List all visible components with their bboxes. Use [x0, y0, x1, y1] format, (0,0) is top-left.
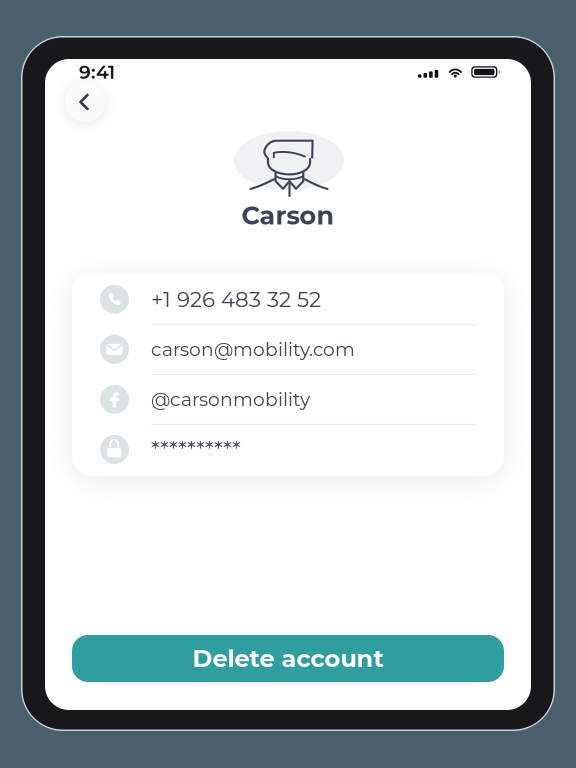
- staticText: Delete account: [192, 644, 383, 673]
- button[interactable]: Delete account: [72, 635, 504, 682]
- staticText: **********: [151, 436, 241, 463]
- staticText: @carsonmobility: [151, 388, 310, 411]
- button[interactable]: Back: [65, 82, 105, 122]
- staticText: Carson: [241, 200, 334, 231]
- staticText: 9:41: [79, 61, 115, 83]
- button[interactable]: +1 926 483 32 52: [100, 275, 476, 325]
- staticText: carson@mobility.com: [151, 338, 355, 361]
- staticText: +1 926 483 32 52: [151, 286, 321, 312]
- button[interactable]: **********: [100, 425, 476, 474]
- button[interactable]: @carsonmobility: [100, 375, 476, 425]
- button[interactable]: carson@mobility.com: [100, 325, 476, 375]
